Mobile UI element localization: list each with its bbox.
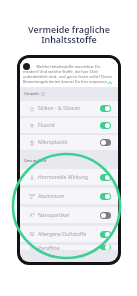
staticText: Welche Inhaltsstoffe moechtest Du meiden… (23, 64, 115, 84)
staticText: Mikroplastik (38, 139, 68, 146)
button[interactable] (100, 105, 111, 112)
staticText: Fluorid (38, 122, 55, 129)
button[interactable] (100, 174, 111, 181)
button[interactable] (100, 193, 111, 200)
button[interactable]: Fluorid (29, 118, 111, 133)
button[interactable]: Silikon - & Siloxan (29, 101, 111, 116)
button[interactable] (100, 139, 111, 146)
button[interactable] (100, 212, 111, 219)
staticText: Hormonelle Wirkung (38, 174, 88, 181)
staticText: Gesundheit (24, 158, 47, 164)
staticText: Aluminium (38, 193, 65, 200)
staticText: Umwelt (24, 91, 39, 97)
staticText: Allergene Duftstoffe (38, 231, 87, 238)
button[interactable] (100, 245, 111, 250)
button[interactable] (100, 122, 111, 129)
staticText: Silikon - & Siloxan (38, 105, 81, 112)
button[interactable]: Allergene Duftstoffe (29, 226, 111, 242)
staticText: Vermeide fragliche Inhaltsstoffe (28, 23, 110, 45)
button[interactable]: Aluminium (29, 188, 111, 204)
staticText: Nanopartikel (38, 212, 70, 219)
button[interactable]: Hormonelle Wirkung (29, 169, 111, 185)
staticText: Paraffine (38, 245, 60, 250)
button[interactable]: Mikroplastik (29, 135, 111, 150)
button[interactable]: Paraffine (29, 245, 111, 250)
button[interactable]: Nanopartikel (29, 207, 111, 223)
button[interactable] (100, 231, 111, 238)
button[interactable]: Einklappen (107, 80, 113, 86)
